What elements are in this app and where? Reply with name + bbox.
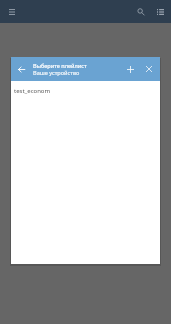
staticText: Ваше устройство bbox=[33, 69, 80, 77]
button[interactable]: Back bbox=[15, 63, 27, 75]
button[interactable]: test_econom bbox=[11, 81, 160, 100]
staticText: test_econom bbox=[14, 87, 51, 95]
button[interactable]: Menu bbox=[3, 3, 20, 20]
button[interactable]: Search bbox=[132, 3, 149, 20]
button[interactable]: Playlists bbox=[152, 3, 169, 20]
button[interactable]: Close bbox=[143, 63, 155, 75]
staticText: Выберите плейлист bbox=[33, 62, 87, 70]
button[interactable]: Add playlist bbox=[124, 63, 136, 75]
